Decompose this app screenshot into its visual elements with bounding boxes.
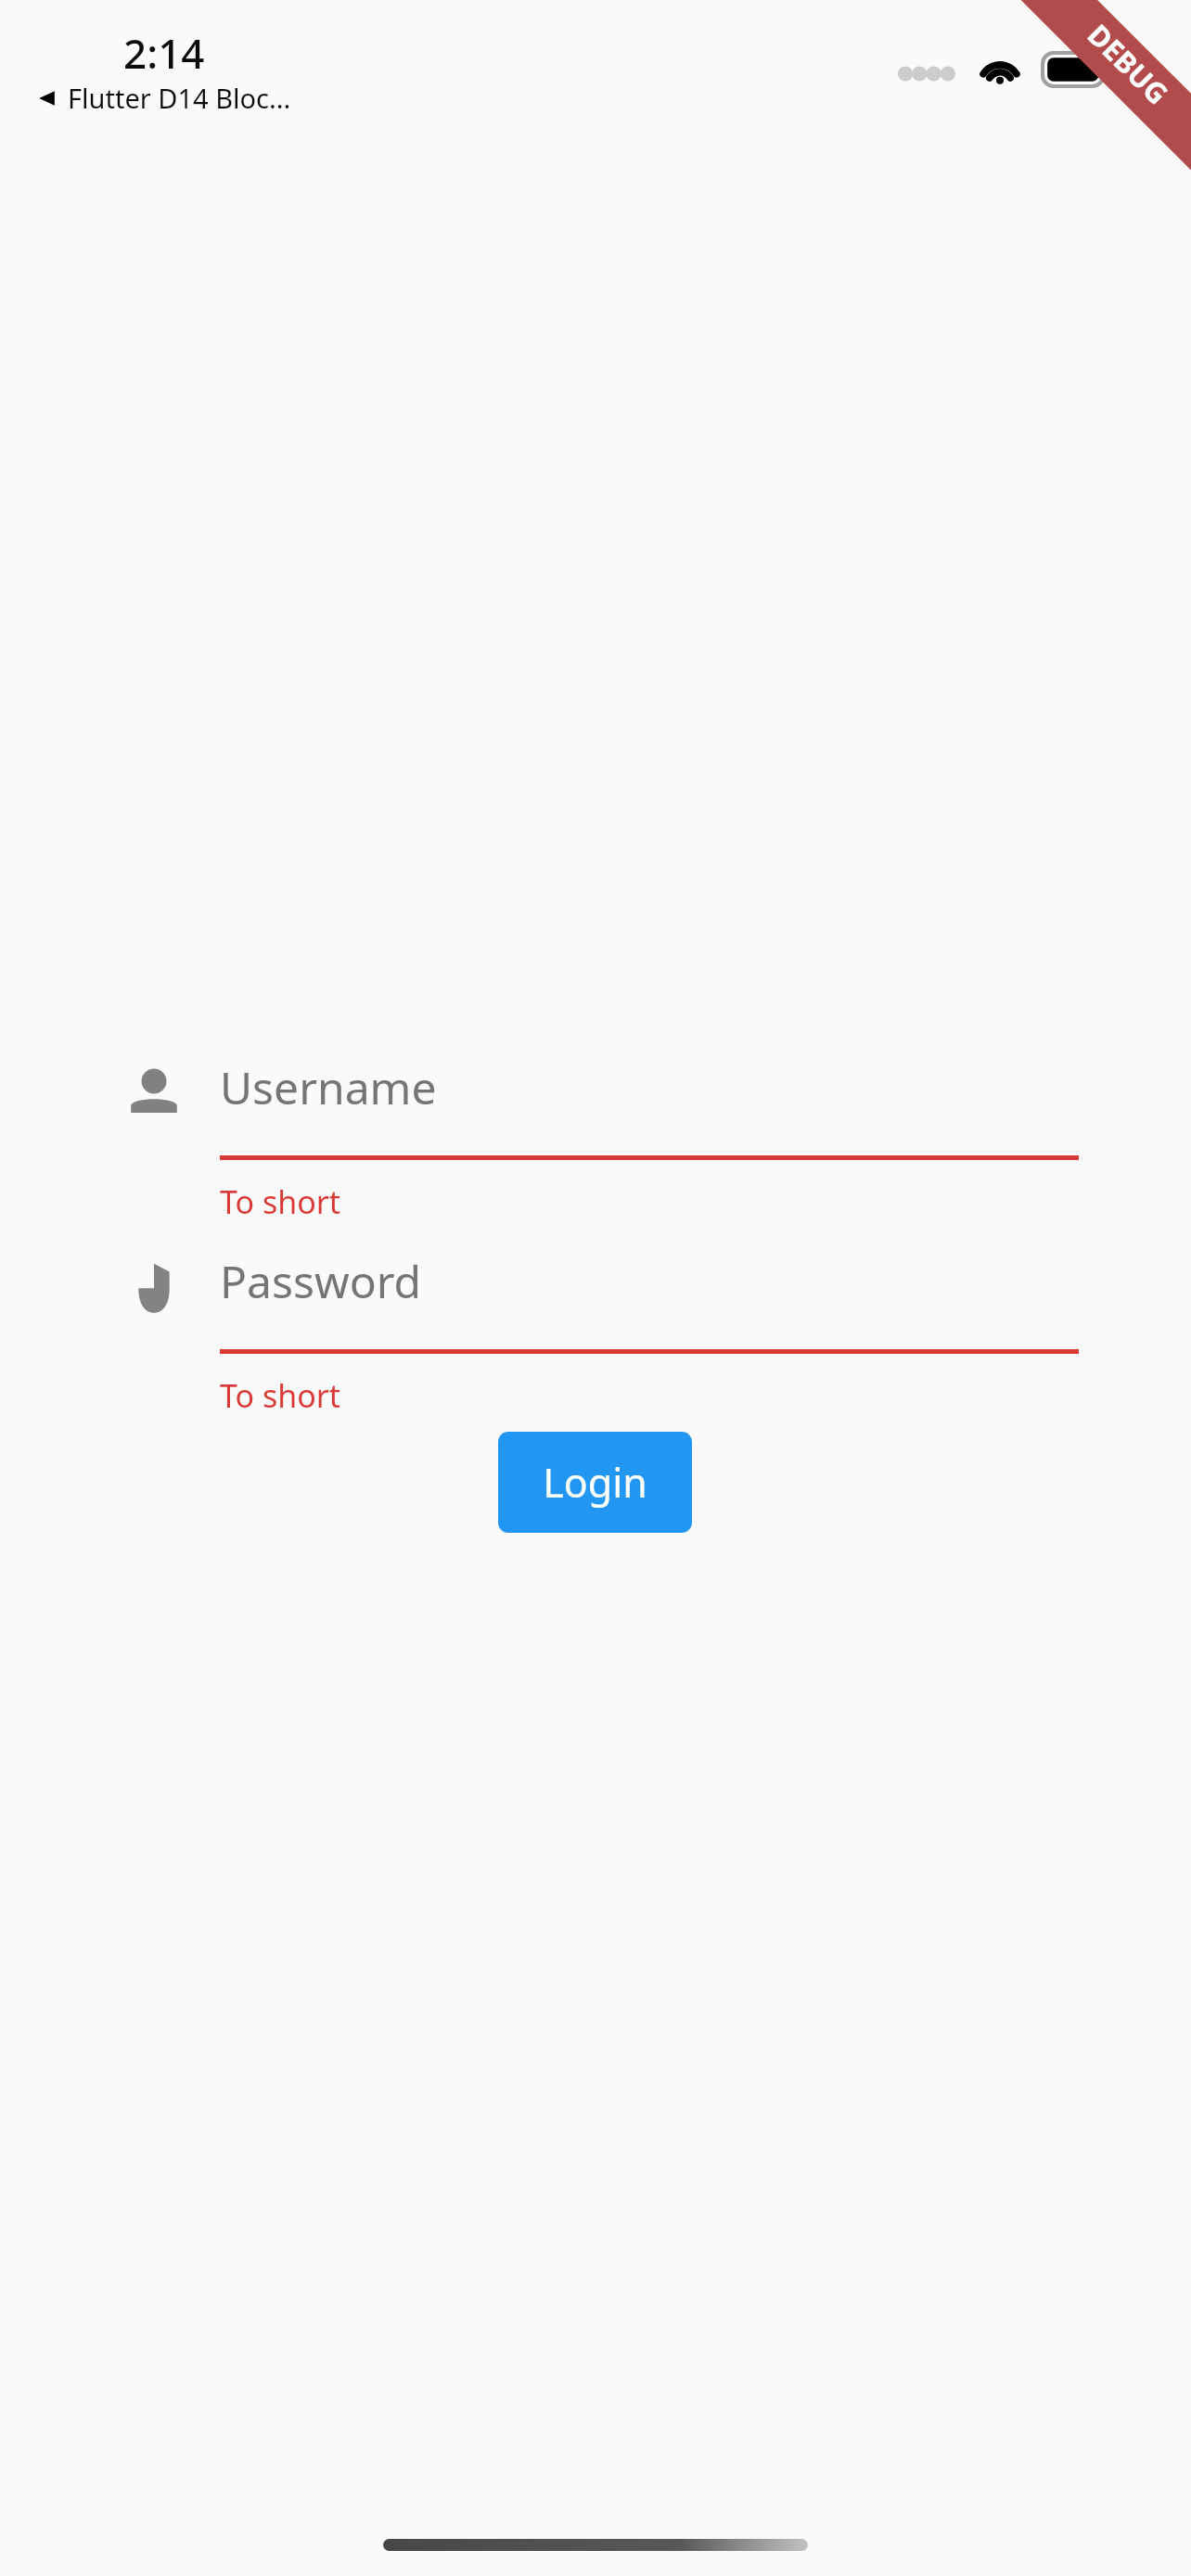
staticText: Password — [220, 1251, 422, 1311]
other: Password — [119, 1253, 189, 1323]
staticText: DEBUG — [1080, 15, 1177, 113]
button[interactable]: Username — [220, 1042, 1079, 1223]
button[interactable]: Login — [498, 1432, 692, 1533]
button[interactable]: Password — [220, 1236, 1079, 1417]
button[interactable]: Back to Flutter D14 Bloc — [35, 80, 291, 116]
other: Username — [119, 1059, 189, 1129]
staticText: To short — [220, 1180, 341, 1223]
staticText: 2:14 — [123, 25, 205, 81]
staticText: Username — [220, 1057, 437, 1117]
staticText: To short — [220, 1374, 341, 1417]
staticText: Flutter D14 Bloc... — [68, 80, 291, 116]
staticText: Login — [543, 1455, 647, 1510]
